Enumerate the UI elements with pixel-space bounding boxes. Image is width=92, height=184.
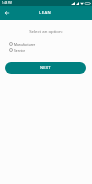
button[interactable]: Back [2,8,12,18]
button[interactable]: Service [9,47,84,53]
staticText: NEXT [40,65,51,70]
button[interactable]: NEXT [5,62,86,74]
staticText: Manufacturer [14,42,36,46]
staticText: Select an option: [0,28,92,34]
staticText: LEAN [39,10,52,16]
staticText: Service [14,48,25,52]
button[interactable]: Manufacturer [9,41,84,47]
staticText: 1:48 PM [2,1,12,5]
